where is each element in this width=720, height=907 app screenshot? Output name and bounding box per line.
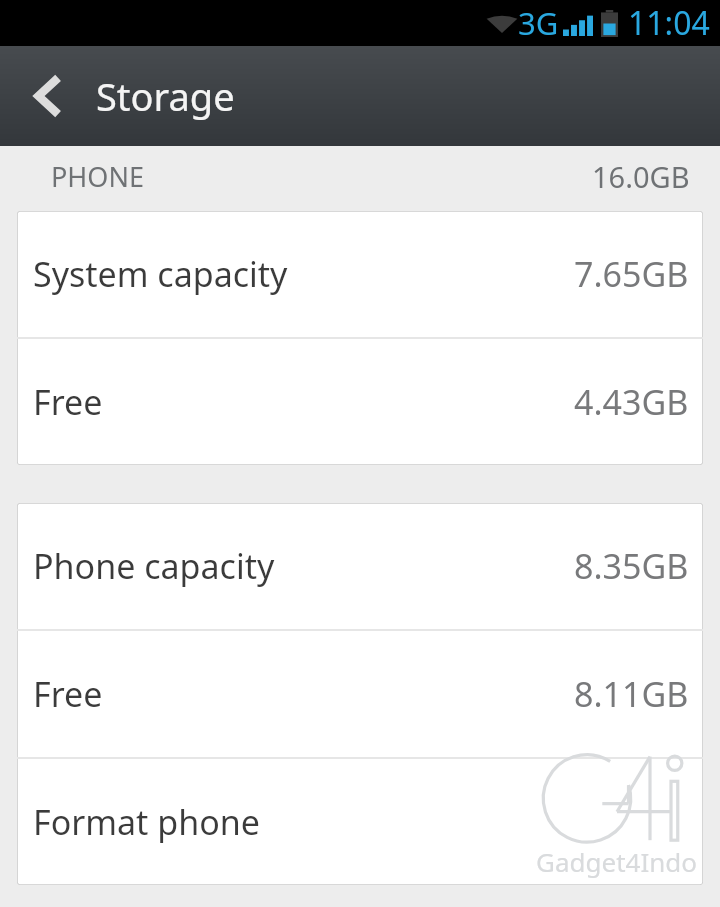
staticText: 11:04 — [628, 1, 710, 45]
button[interactable]: System capacity — [17, 211, 703, 337]
staticText: 16.0GB — [592, 157, 690, 196]
button[interactable]: Free — [17, 631, 703, 757]
staticText: Free — [33, 379, 103, 425]
staticText: 4.43GB — [574, 379, 689, 425]
staticText: 3G — [518, 2, 559, 44]
staticText: PHONE — [51, 158, 144, 195]
button[interactable]: Back — [0, 46, 96, 146]
staticText: Phone capacity — [33, 543, 275, 589]
button[interactable]: Phone capacity — [17, 503, 703, 629]
staticText: Gadget4Indo — [536, 844, 698, 879]
staticText: 8.11GB — [574, 671, 689, 717]
button[interactable]: Free — [17, 339, 703, 465]
staticText: Format phone — [33, 799, 260, 845]
staticText: 8.35GB — [574, 543, 689, 589]
staticText: 7.65GB — [574, 251, 689, 297]
staticText: Free — [33, 671, 103, 717]
staticText: System capacity — [33, 251, 288, 297]
staticText: Storage — [96, 70, 235, 122]
button[interactable]: Format phone — [17, 759, 703, 885]
